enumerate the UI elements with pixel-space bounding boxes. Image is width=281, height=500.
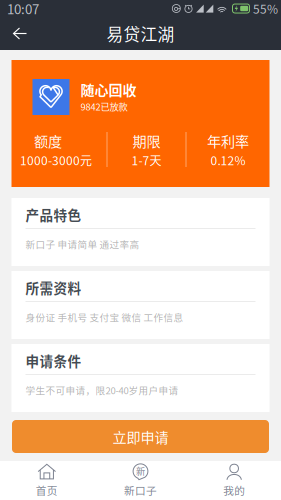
button[interactable]: 立即申请 bbox=[12, 420, 269, 453]
staticText: 55% bbox=[253, 0, 278, 17]
staticText: 新口子 bbox=[124, 482, 157, 498]
staticText: 1-7天 bbox=[131, 151, 161, 169]
staticText: 立即申请 bbox=[112, 426, 168, 447]
staticText: 年利率 bbox=[207, 130, 249, 151]
staticText: 我的 bbox=[223, 482, 245, 498]
staticText: 1000-3000元 bbox=[20, 151, 92, 169]
button[interactable]: 我的 bbox=[187, 461, 281, 500]
staticText: 申请条件 bbox=[25, 351, 81, 370]
staticText: 额度 bbox=[34, 130, 62, 151]
button[interactable]: Back bbox=[0, 17, 40, 50]
staticText: 期限 bbox=[132, 130, 160, 151]
button[interactable]: 新 bbox=[94, 461, 187, 500]
staticText: 首页 bbox=[36, 482, 58, 498]
staticText: 学生不可申请，限20-40岁用户申请 bbox=[25, 383, 178, 397]
staticText: 身份证 手机号 支付宝 微信 工作信息 bbox=[25, 310, 183, 324]
staticText: 0.12% bbox=[210, 151, 245, 169]
staticText: 产品特色 bbox=[25, 205, 81, 224]
staticText: 新口子 申请简单 通过率高 bbox=[25, 237, 139, 251]
staticText: 9842已放款 bbox=[80, 100, 127, 113]
button[interactable]: 首页 bbox=[0, 461, 94, 500]
staticText: 易贷江湖 bbox=[106, 21, 174, 45]
staticText: 所需资料 bbox=[25, 278, 81, 297]
staticText: 随心回收 bbox=[80, 79, 136, 100]
staticText: 10:07 bbox=[7, 0, 39, 18]
staticText: 新 bbox=[136, 464, 145, 477]
